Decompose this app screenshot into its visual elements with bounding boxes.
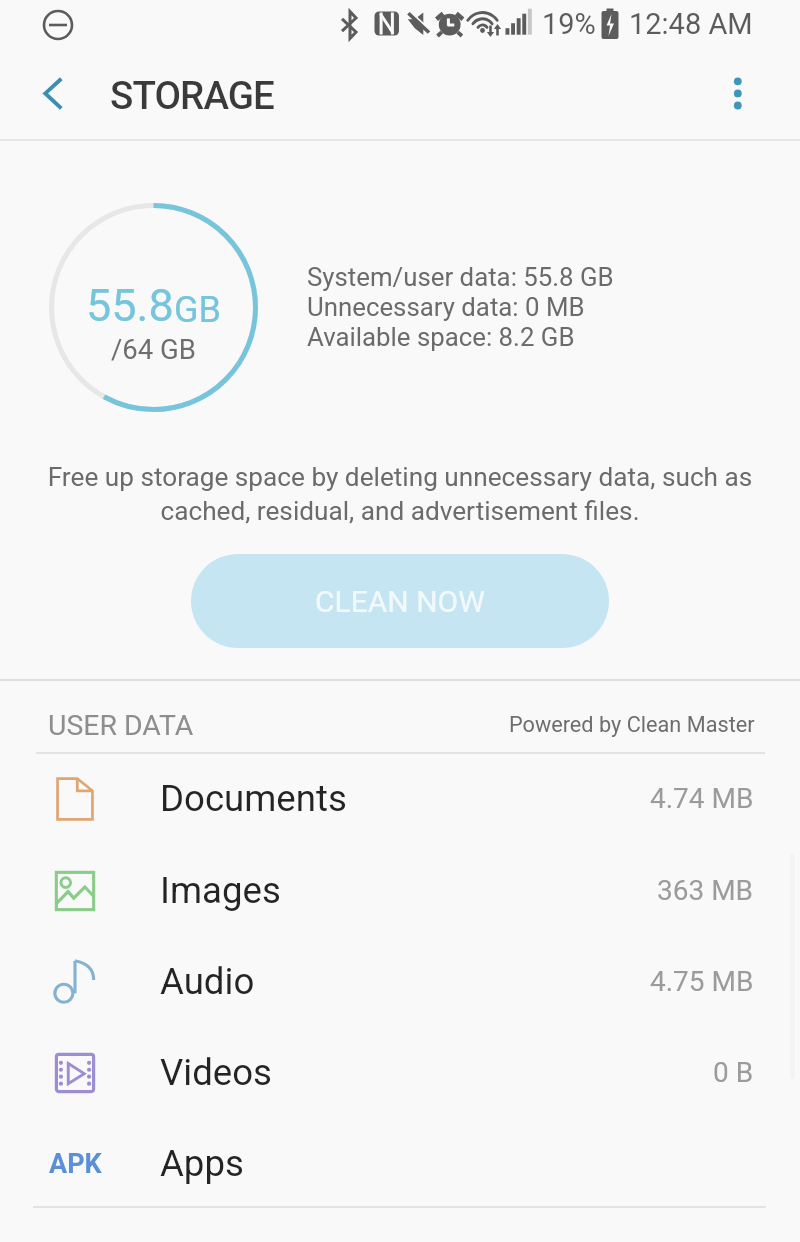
staticText: 0 B: [713, 1056, 754, 1089]
button[interactable]: Documents: [0, 753, 800, 844]
button[interactable]: APK: [0, 1118, 800, 1209]
staticText: Free up storage space by deleting unnece…: [34, 462, 766, 526]
staticText: Powered by Clean Master: [509, 712, 755, 737]
staticText: Images: [160, 869, 281, 912]
staticText: Videos: [160, 1051, 272, 1094]
staticText: System/user data: 55.8 GB: [307, 262, 614, 292]
staticText: 19%: [542, 7, 596, 41]
staticText: /64 GB: [111, 333, 196, 365]
staticText: 12:48 AM: [629, 7, 753, 41]
staticText: 4.74 MB: [650, 782, 754, 815]
staticText: USER DATA: [48, 709, 194, 742]
button[interactable]: Audio: [0, 936, 800, 1027]
staticText: Apps: [160, 1142, 244, 1185]
staticText: CLEAN NOW: [315, 584, 485, 619]
staticText: STORAGE: [110, 73, 274, 118]
staticText: 55.8: [86, 279, 174, 332]
staticText: Unnecessary data: 0 MB: [307, 292, 585, 322]
staticText: 363 MB: [657, 874, 754, 907]
button[interactable]: Back: [20, 63, 80, 123]
button[interactable]: CLEAN NOW: [191, 554, 609, 648]
staticText: Documents: [160, 777, 347, 820]
staticText: APK: [49, 1148, 102, 1180]
staticText: GB: [174, 289, 221, 331]
button[interactable]: More options: [708, 67, 768, 127]
staticText: 4.75 MB: [650, 965, 754, 998]
button[interactable]: Videos: [0, 1027, 800, 1118]
button[interactable]: Images: [0, 845, 800, 936]
staticText: Audio: [160, 960, 255, 1003]
staticText: Available space: 8.2 GB: [307, 322, 575, 352]
